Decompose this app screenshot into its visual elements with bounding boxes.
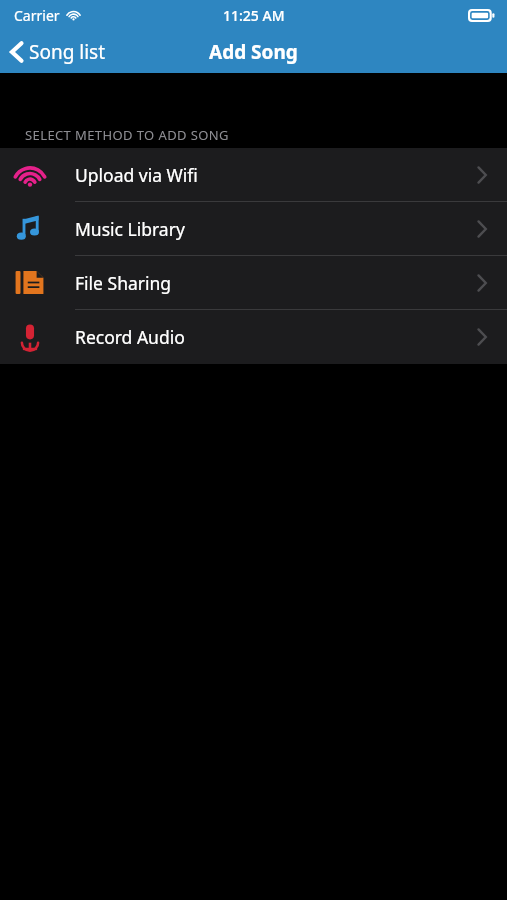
button[interactable]: Song list <box>0 35 118 69</box>
staticText: Carrier <box>14 6 60 25</box>
button[interactable]: File Sharing <box>0 256 507 309</box>
button[interactable]: Music <box>0 202 507 255</box>
staticText: File Sharing <box>75 271 172 295</box>
button[interactable]: Wifi <box>0 148 507 201</box>
other: File Sharing <box>15 268 44 297</box>
staticText: Music Library <box>75 217 185 241</box>
staticText: SELECT METHOD TO ADD SONG <box>25 126 229 144</box>
staticText: Song list <box>29 39 106 65</box>
staticText: Add Song <box>209 39 298 65</box>
other: Wifi <box>14 159 46 191</box>
other: Music <box>15 214 45 244</box>
staticText: Upload via Wifi <box>75 163 198 187</box>
staticText: 11:25 AM <box>223 6 285 25</box>
other: Record Audio <box>15 322 45 352</box>
button[interactable]: Record Audio <box>0 310 507 364</box>
staticText: Record Audio <box>75 325 185 349</box>
